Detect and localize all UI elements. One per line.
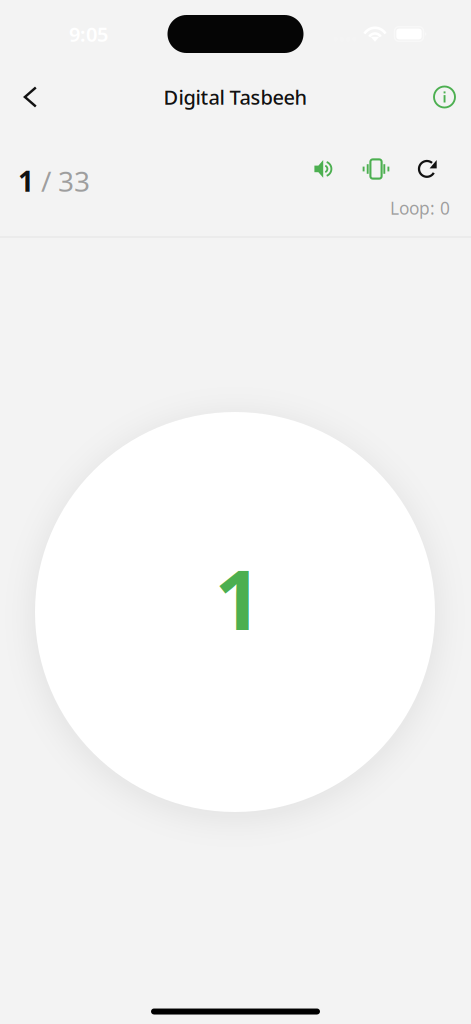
button[interactable]: Increment count xyxy=(35,412,435,812)
button[interactable]: Back xyxy=(0,73,60,121)
staticText: 1 xyxy=(18,162,34,200)
button[interactable]: Reset counter xyxy=(402,151,454,187)
staticText: Loop: 0 xyxy=(390,196,450,219)
staticText: 9:05 xyxy=(69,21,108,47)
staticText: 1 xyxy=(214,543,261,653)
button[interactable]: Sound xyxy=(298,151,350,187)
staticText: Digital Tasbeeh xyxy=(163,84,307,110)
staticText: / 33 xyxy=(34,162,90,200)
button[interactable]: Information xyxy=(418,73,471,121)
button[interactable]: Vibration xyxy=(350,151,402,187)
